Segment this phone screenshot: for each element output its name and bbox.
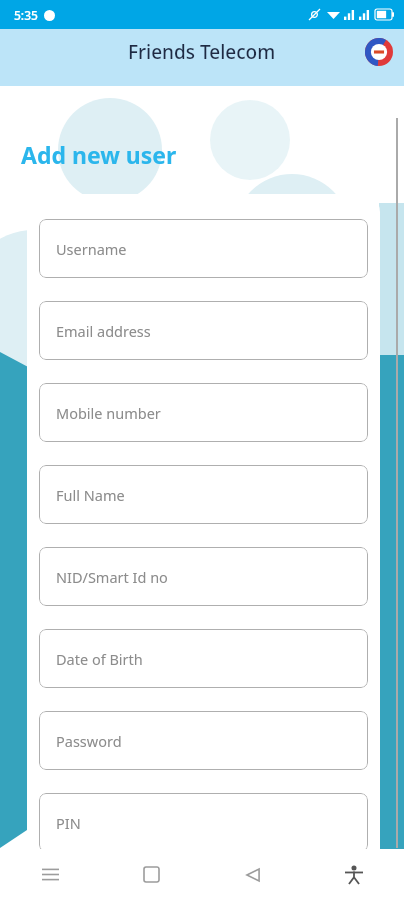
button[interactable]: Mobile number xyxy=(39,383,368,442)
staticText: 5:35 xyxy=(14,7,38,23)
staticText: NID/Smart Id no xyxy=(56,567,168,587)
button[interactable]: NID/Smart Id no xyxy=(39,547,368,606)
button[interactable]: Email address xyxy=(39,301,368,360)
button[interactable]: Accessibility xyxy=(303,849,404,900)
button[interactable]: PIN xyxy=(39,793,368,852)
button[interactable]: Full Name xyxy=(39,465,368,524)
button[interactable]: Date of Birth xyxy=(39,629,368,688)
staticText: Password xyxy=(56,731,122,751)
staticText: Username xyxy=(56,239,127,259)
staticText: Full Name xyxy=(56,485,125,505)
staticText: Date of Birth xyxy=(56,649,143,669)
button[interactable]: Menu xyxy=(0,849,101,900)
button[interactable]: Username xyxy=(39,219,368,278)
staticText: PIN xyxy=(56,813,81,833)
staticText: Mobile number xyxy=(56,403,161,423)
staticText: Add new user xyxy=(21,139,177,170)
button[interactable]: Profile xyxy=(362,35,396,69)
button[interactable]: Password xyxy=(39,711,368,770)
button[interactable]: Home xyxy=(101,849,202,900)
button[interactable]: Back xyxy=(202,849,303,900)
staticText: Email address xyxy=(56,321,151,341)
staticText: Friends Telecom xyxy=(128,39,276,65)
